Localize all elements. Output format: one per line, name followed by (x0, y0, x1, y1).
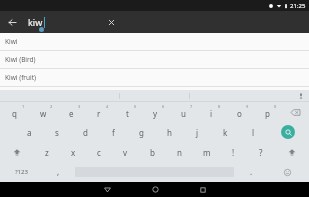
button[interactable]: w (29, 102, 57, 122)
button[interactable]: ? (247, 142, 274, 162)
button[interactable]: Home (141, 182, 169, 197)
staticText: 5 (134, 104, 137, 109)
button[interactable]: Kiwi (Bird) (0, 51, 309, 69)
staticText: s (55, 127, 59, 138)
staticText: 7 (190, 104, 193, 109)
staticText: 6 (162, 104, 165, 109)
button[interactable]: Voice input (296, 91, 306, 101)
staticText: m (203, 147, 211, 158)
button[interactable]: m (193, 142, 220, 162)
staticText: z (45, 147, 49, 158)
staticText: g (139, 127, 144, 138)
staticText: 4 (106, 104, 109, 109)
staticText: p (265, 108, 270, 119)
staticText: Kiwi (5, 37, 18, 46)
staticText: e (69, 108, 74, 119)
staticText: l (252, 127, 255, 138)
staticText: c (97, 147, 101, 158)
button[interactable]: t (113, 102, 141, 122)
button[interactable]: ! (220, 142, 247, 162)
button[interactable]: Search (267, 122, 309, 142)
staticText: 0 (274, 104, 277, 109)
button[interactable]: Emoji (266, 162, 309, 182)
button[interactable]: y (141, 102, 169, 122)
staticText: 2 (50, 104, 53, 109)
button[interactable]: Kiwi (0, 33, 309, 51)
button[interactable]: v (112, 142, 139, 162)
button[interactable]: r (85, 102, 113, 122)
staticText: h (167, 127, 172, 138)
staticText: . (250, 166, 253, 177)
button[interactable]: j (183, 122, 211, 142)
button[interactable]: . (236, 162, 266, 182)
staticText: kiw (28, 16, 43, 28)
button[interactable]: z (34, 142, 60, 162)
button[interactable]: o (225, 102, 253, 122)
staticText: Kiwi (fruit) (5, 73, 37, 82)
staticText: w (40, 108, 47, 119)
staticText: ?123 (15, 168, 28, 176)
staticText: r (97, 108, 101, 119)
staticText: , (57, 166, 60, 177)
button[interactable]: Backspace (281, 102, 309, 122)
staticText: 9 (246, 104, 249, 109)
staticText: ! (232, 147, 235, 158)
staticText: x (71, 147, 76, 158)
button[interactable]: h (155, 122, 183, 142)
staticText: k (223, 127, 228, 138)
staticText: d (83, 127, 88, 138)
button[interactable]: p (253, 102, 281, 122)
button[interactable]: l (239, 122, 267, 142)
button[interactable]: s (43, 122, 71, 142)
button[interactable]: g (127, 122, 155, 142)
staticText: n (177, 147, 182, 158)
button[interactable]: Kiwi (fruit) (0, 69, 309, 87)
staticText: 21:25 (290, 2, 306, 10)
button[interactable]: x (60, 142, 86, 162)
staticText: t (126, 108, 129, 119)
button[interactable]: , (43, 162, 73, 182)
staticText: v (123, 147, 128, 158)
button[interactable]: u (169, 102, 197, 122)
button[interactable]: ?123 (0, 162, 43, 182)
button[interactable]: Back (4, 14, 20, 30)
staticText: Kiwi (Bird) (5, 55, 36, 64)
button[interactable]: Clear query (103, 14, 119, 30)
staticText: 3 (78, 104, 81, 109)
staticText: 1 (22, 104, 25, 109)
staticText: f (112, 127, 115, 138)
staticText: 8 (218, 104, 221, 109)
button[interactable]: i (197, 102, 225, 122)
button[interactable]: b (139, 142, 166, 162)
staticText: q (12, 108, 17, 119)
button[interactable]: e (57, 102, 85, 122)
button[interactable]: n (166, 142, 193, 162)
staticText: i (210, 108, 213, 119)
staticText: a (27, 127, 32, 138)
button[interactable]: Shift (0, 142, 34, 162)
staticText: y (153, 108, 158, 119)
staticText: o (237, 108, 242, 119)
button[interactable]: q (0, 102, 29, 122)
button[interactable]: Back (93, 182, 121, 197)
staticText: b (150, 147, 155, 158)
button[interactable]: Shift (274, 142, 309, 162)
staticText: u (181, 108, 186, 119)
button[interactable]: d (71, 122, 99, 142)
button[interactable]: f (99, 122, 127, 142)
button[interactable]: a (15, 122, 43, 142)
button[interactable]: k (211, 122, 239, 142)
button[interactable]: c (86, 142, 112, 162)
button[interactable]: Recents (189, 182, 217, 197)
staticText: ? (259, 147, 263, 158)
staticText: j (196, 127, 199, 138)
